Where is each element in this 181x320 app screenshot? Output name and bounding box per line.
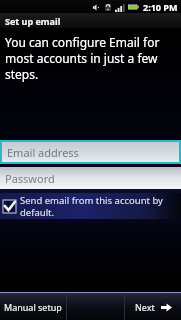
button[interactable]: Next [125,293,181,320]
staticText: Manual setup [4,301,62,313]
other: Next [161,303,172,312]
staticText: Set up email [5,15,61,27]
button[interactable]: Send email from this account by default. [0,193,181,219]
button[interactable]: Email address [2,142,179,162]
button[interactable]: Manual setup [0,293,66,320]
button[interactable]: Password [0,167,181,189]
staticText: Email address [7,145,79,160]
staticText: Password [5,171,55,186]
staticText: 2:10 PM [143,1,178,13]
staticText: Next [135,301,155,313]
staticText: Send email from this account by default. [20,194,181,218]
staticText: You can configure Email for most account… [5,34,176,82]
